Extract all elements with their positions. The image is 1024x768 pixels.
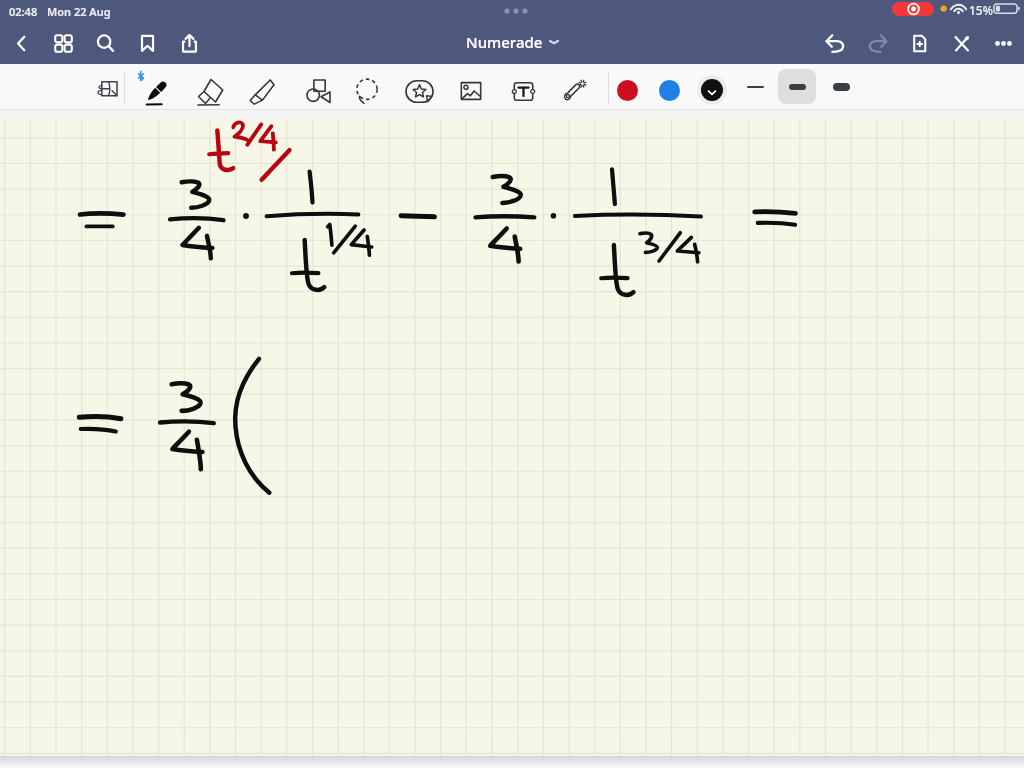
button[interactable]: Search bbox=[84, 22, 126, 64]
button[interactable]: Stroke width bbox=[736, 69, 774, 104]
button[interactable]: Highlighter bbox=[240, 65, 284, 117]
button[interactable]: Colour bbox=[651, 72, 687, 108]
button[interactable]: Back bbox=[0, 22, 42, 64]
button[interactable]: New page bbox=[898, 22, 940, 64]
button[interactable]: More options bbox=[982, 22, 1024, 64]
button[interactable]: Redo bbox=[856, 22, 898, 64]
button[interactable]: Eraser bbox=[188, 65, 232, 117]
staticText: 15% bbox=[969, 2, 993, 18]
button[interactable]: Pages bbox=[42, 22, 84, 64]
button[interactable]: Text bbox=[501, 65, 545, 117]
button[interactable]: Current colour bbox=[694, 72, 730, 108]
button[interactable]: Scissors bbox=[940, 22, 982, 64]
button[interactable]: Numerade bbox=[460, 21, 565, 63]
button[interactable]: Stroke width bbox=[822, 69, 860, 104]
staticText: Numerade bbox=[466, 32, 543, 52]
button[interactable]: Image bbox=[449, 65, 493, 117]
button[interactable]: Sticker bbox=[397, 65, 441, 117]
button[interactable]: Lasso bbox=[345, 65, 389, 117]
button[interactable]: Bookmark bbox=[126, 22, 168, 64]
button[interactable]: Page back bbox=[85, 62, 129, 114]
button[interactable]: Undo bbox=[814, 22, 856, 64]
button[interactable]: Pen bbox=[135, 65, 179, 117]
button[interactable]: Magic wand bbox=[553, 65, 597, 117]
button[interactable]: Stroke width bbox=[778, 69, 816, 104]
button[interactable]: Share bbox=[168, 22, 210, 64]
staticText: 02:48 bbox=[9, 4, 38, 19]
button[interactable]: Colour bbox=[609, 72, 645, 108]
staticText: Mon 22 Aug bbox=[47, 4, 111, 19]
button[interactable]: Shapes bbox=[296, 65, 340, 117]
